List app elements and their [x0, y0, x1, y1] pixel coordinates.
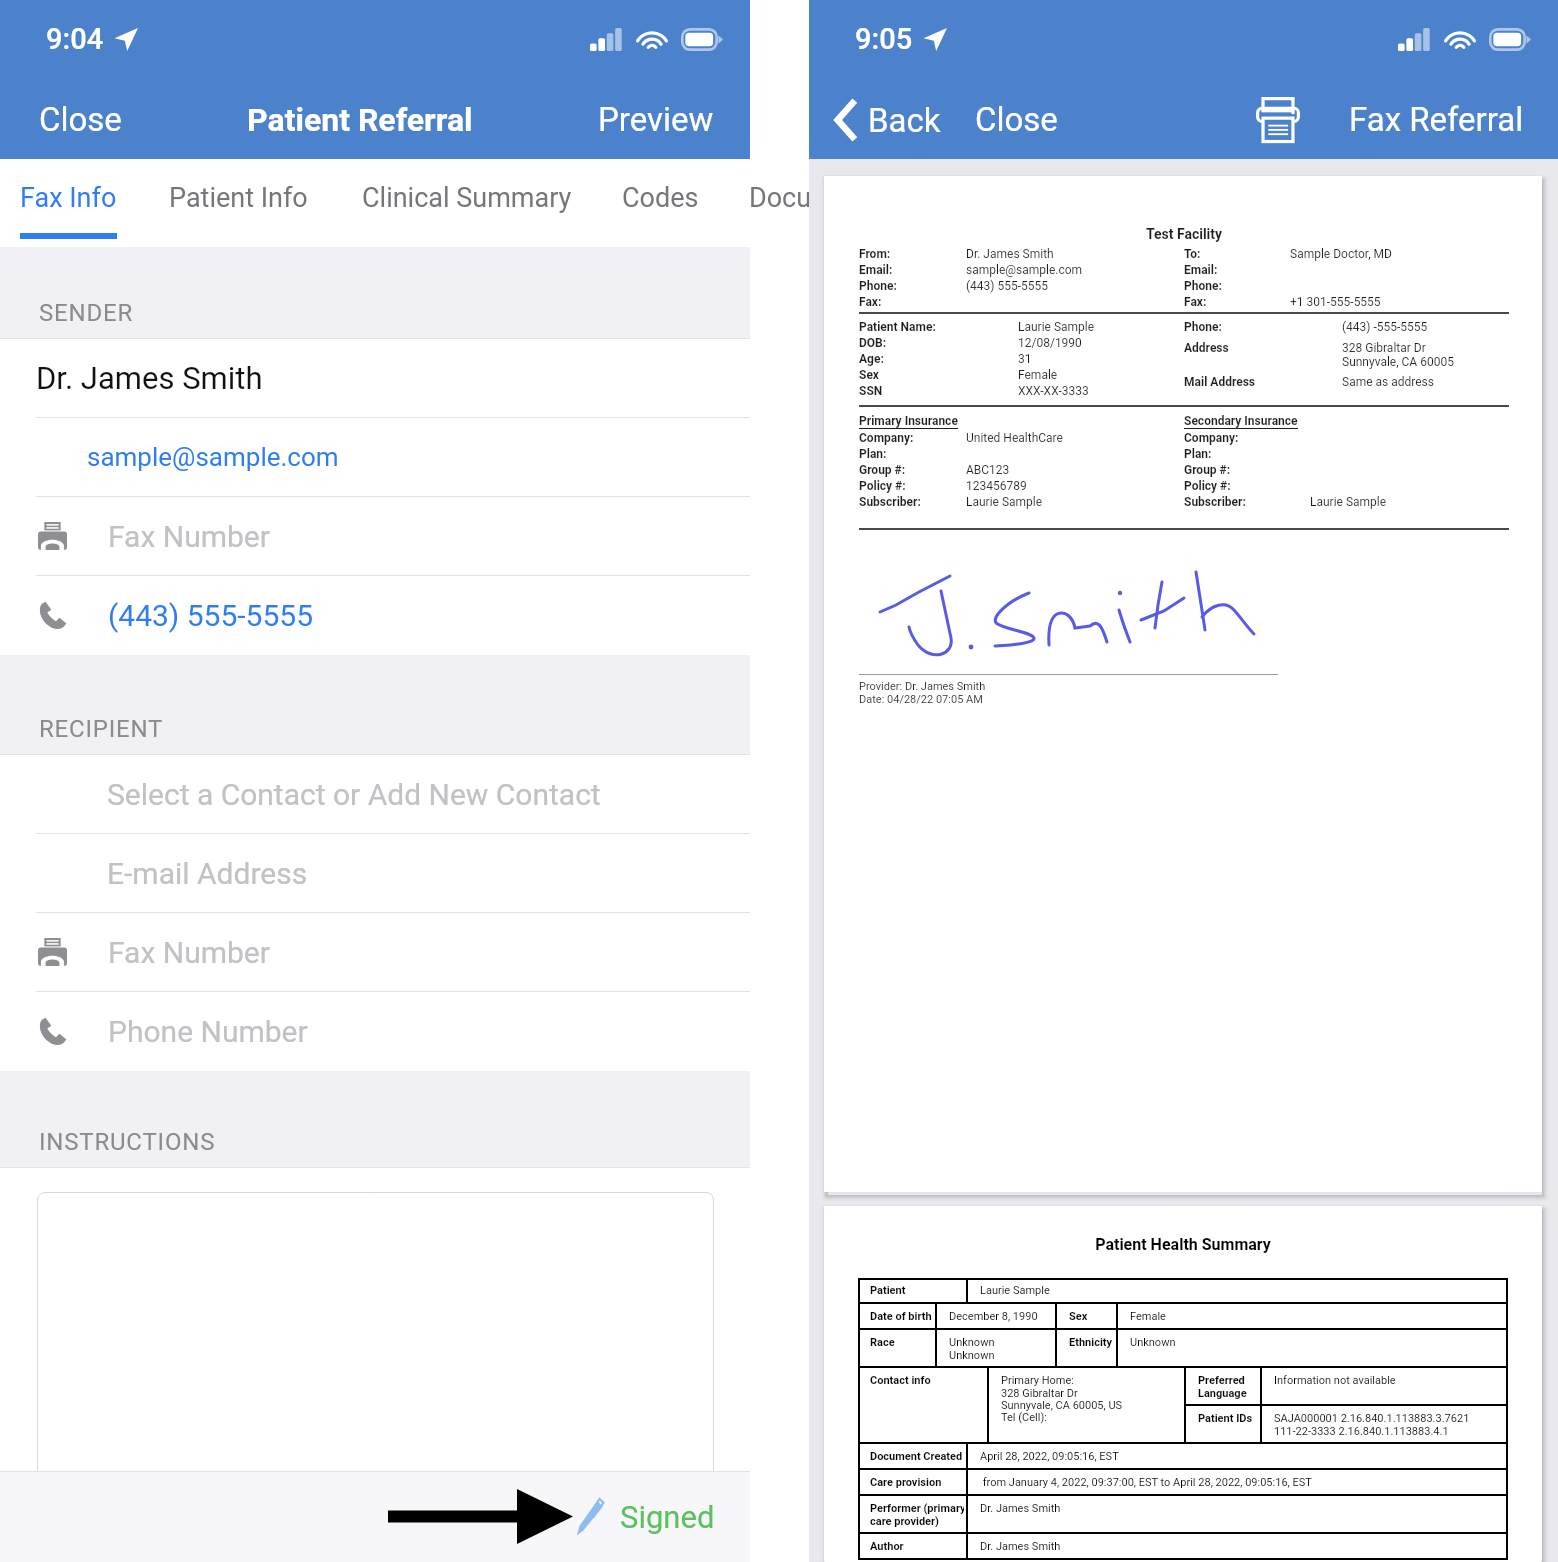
staticText: Close [39, 100, 122, 139]
staticText: Provider: Dr. James Smith [859, 680, 986, 693]
staticText: Date: 04/28/22 07:05 AM [859, 693, 983, 706]
staticText: Ethnicity [1069, 1336, 1113, 1349]
staticText: Subscriber: [859, 495, 966, 509]
button[interactable]: Print [1256, 97, 1300, 142]
staticText: Patient Referral [247, 101, 473, 139]
button[interactable]: Close [975, 100, 1058, 139]
staticText: Sample Doctor, MD [1290, 247, 1392, 261]
staticText: April 28, 2022, 09:05:16, EST [980, 1450, 1119, 1463]
button[interactable]: Fax Number [0, 497, 750, 576]
button[interactable]: Fax Referral [1349, 100, 1524, 139]
staticText: Preferred Language [1198, 1374, 1247, 1399]
staticText: Primary Insurance [859, 414, 958, 428]
staticText: Contact info [870, 1374, 931, 1387]
staticText: Patient [870, 1284, 906, 1297]
staticText: Performer (primary care provider) [870, 1502, 964, 1527]
button[interactable]: Documents [724, 159, 912, 247]
staticText: RECIPIENT [39, 715, 164, 743]
button[interactable]: Codes [597, 159, 724, 247]
staticText: Group #: [859, 463, 966, 477]
button[interactable]: Dr. James Smith [0, 339, 750, 418]
staticText: December 8, 1990 [949, 1310, 1038, 1323]
staticText: Clinical Summary [362, 182, 572, 214]
staticText: Sex [859, 368, 1018, 382]
staticText: Female [1130, 1310, 1166, 1323]
staticText: SAJA000001 2.16.840.1.113883.3.7621 111-… [1274, 1412, 1470, 1437]
staticText: Company: [1184, 431, 1290, 445]
staticText: E-mail Address [107, 856, 308, 891]
button[interactable]: Select a Contact or Add New Contact [0, 755, 750, 834]
staticText: Phone: [1184, 320, 1342, 334]
staticText: DOB: [859, 336, 1018, 350]
button[interactable]: (443) 555-5555 [0, 576, 750, 655]
staticText: Laurie Sample [1310, 495, 1387, 509]
staticText: Fax Number [108, 935, 270, 970]
staticText: Care provision [870, 1476, 942, 1489]
staticText: 328 Gibraltar Dr [1342, 341, 1426, 355]
staticText: sample@sample.com [966, 263, 1083, 277]
staticText: Preview [598, 100, 714, 139]
staticText: 9:04 [46, 22, 104, 56]
button[interactable]: Fax Info [0, 159, 143, 247]
staticText: Company: [859, 431, 966, 445]
button[interactable]: sample@sample.com [0, 418, 750, 497]
staticText: Fax: [1184, 295, 1290, 309]
staticText: Unknown [1130, 1336, 1176, 1349]
staticText: (443) 555-5555 [108, 598, 314, 633]
button[interactable]: E-mail Address [0, 834, 750, 913]
staticText: from January 4, 2022, 09:37:00, EST to A… [980, 1476, 1312, 1489]
staticText: XXX-XX-3333 [1018, 384, 1089, 398]
staticText: Codes [622, 182, 699, 214]
staticText: Back [868, 101, 941, 140]
staticText: Dr. James Smith [966, 247, 1054, 261]
staticText: Race [870, 1336, 895, 1349]
staticText: Test Facility [859, 226, 1509, 242]
staticText: To: [1184, 247, 1290, 261]
staticText: Mail Address [1184, 375, 1342, 389]
staticText: Phone: [1184, 279, 1290, 293]
staticText: Primary Home: 328 Gibraltar Dr Sunnyvale… [1001, 1374, 1123, 1423]
staticText: Laurie Sample [1018, 320, 1095, 334]
staticText: Sex [1069, 1310, 1088, 1323]
staticText: Sunnyvale, CA 60005 [1342, 355, 1454, 369]
button[interactable]: Close [39, 100, 122, 139]
staticText: 123456789 [966, 479, 1027, 493]
staticText: From: [859, 247, 966, 261]
staticText: Email: [1184, 263, 1290, 277]
staticText: Fax Number [108, 519, 270, 554]
staticText: United HealthCare [966, 431, 1063, 445]
staticText: Plan: [859, 447, 966, 461]
staticText: 12/08/1990 [1018, 336, 1082, 350]
staticText: Documents [749, 182, 887, 214]
staticText: Policy #: [1184, 479, 1290, 493]
staticText: (443) 555-5555 [966, 279, 1049, 293]
button[interactable]: Back [833, 99, 943, 141]
staticText: Fax Info [20, 182, 117, 214]
button[interactable]: Preview [598, 100, 714, 139]
button[interactable]: Phone Number [0, 992, 750, 1071]
staticText: Dr. James Smith [980, 1502, 1061, 1515]
staticText: Fax Referral [1349, 100, 1524, 139]
staticText: ABC123 [966, 463, 1010, 477]
staticText: Laurie Sample [980, 1284, 1050, 1297]
staticText: Secondary Insurance [1184, 414, 1298, 428]
staticText: Patient IDs [1198, 1412, 1253, 1425]
staticText: Plan: [1184, 447, 1290, 461]
staticText: Address [1184, 341, 1342, 355]
staticText: Information not available [1274, 1374, 1396, 1387]
staticText: Patient Health Summary [858, 1235, 1508, 1254]
staticText: Date of birth [870, 1310, 932, 1323]
staticText: Signed [620, 1499, 715, 1535]
staticText: SSN [859, 384, 1018, 398]
button[interactable]: Clinical Summary [335, 159, 597, 247]
button[interactable]: Fax Number [0, 913, 750, 992]
staticText: Close [975, 100, 1058, 139]
staticText: +1 301-555-5555 [1290, 295, 1381, 309]
staticText: Policy #: [859, 479, 966, 493]
staticText: sample@sample.com [87, 442, 339, 472]
staticText: 9:05 [855, 22, 913, 56]
button[interactable]: Signed [575, 1497, 715, 1537]
staticText: Unknown Unknown [949, 1336, 995, 1361]
staticText: Laurie Sample [966, 495, 1043, 509]
button[interactable]: Patient Info [143, 159, 335, 247]
